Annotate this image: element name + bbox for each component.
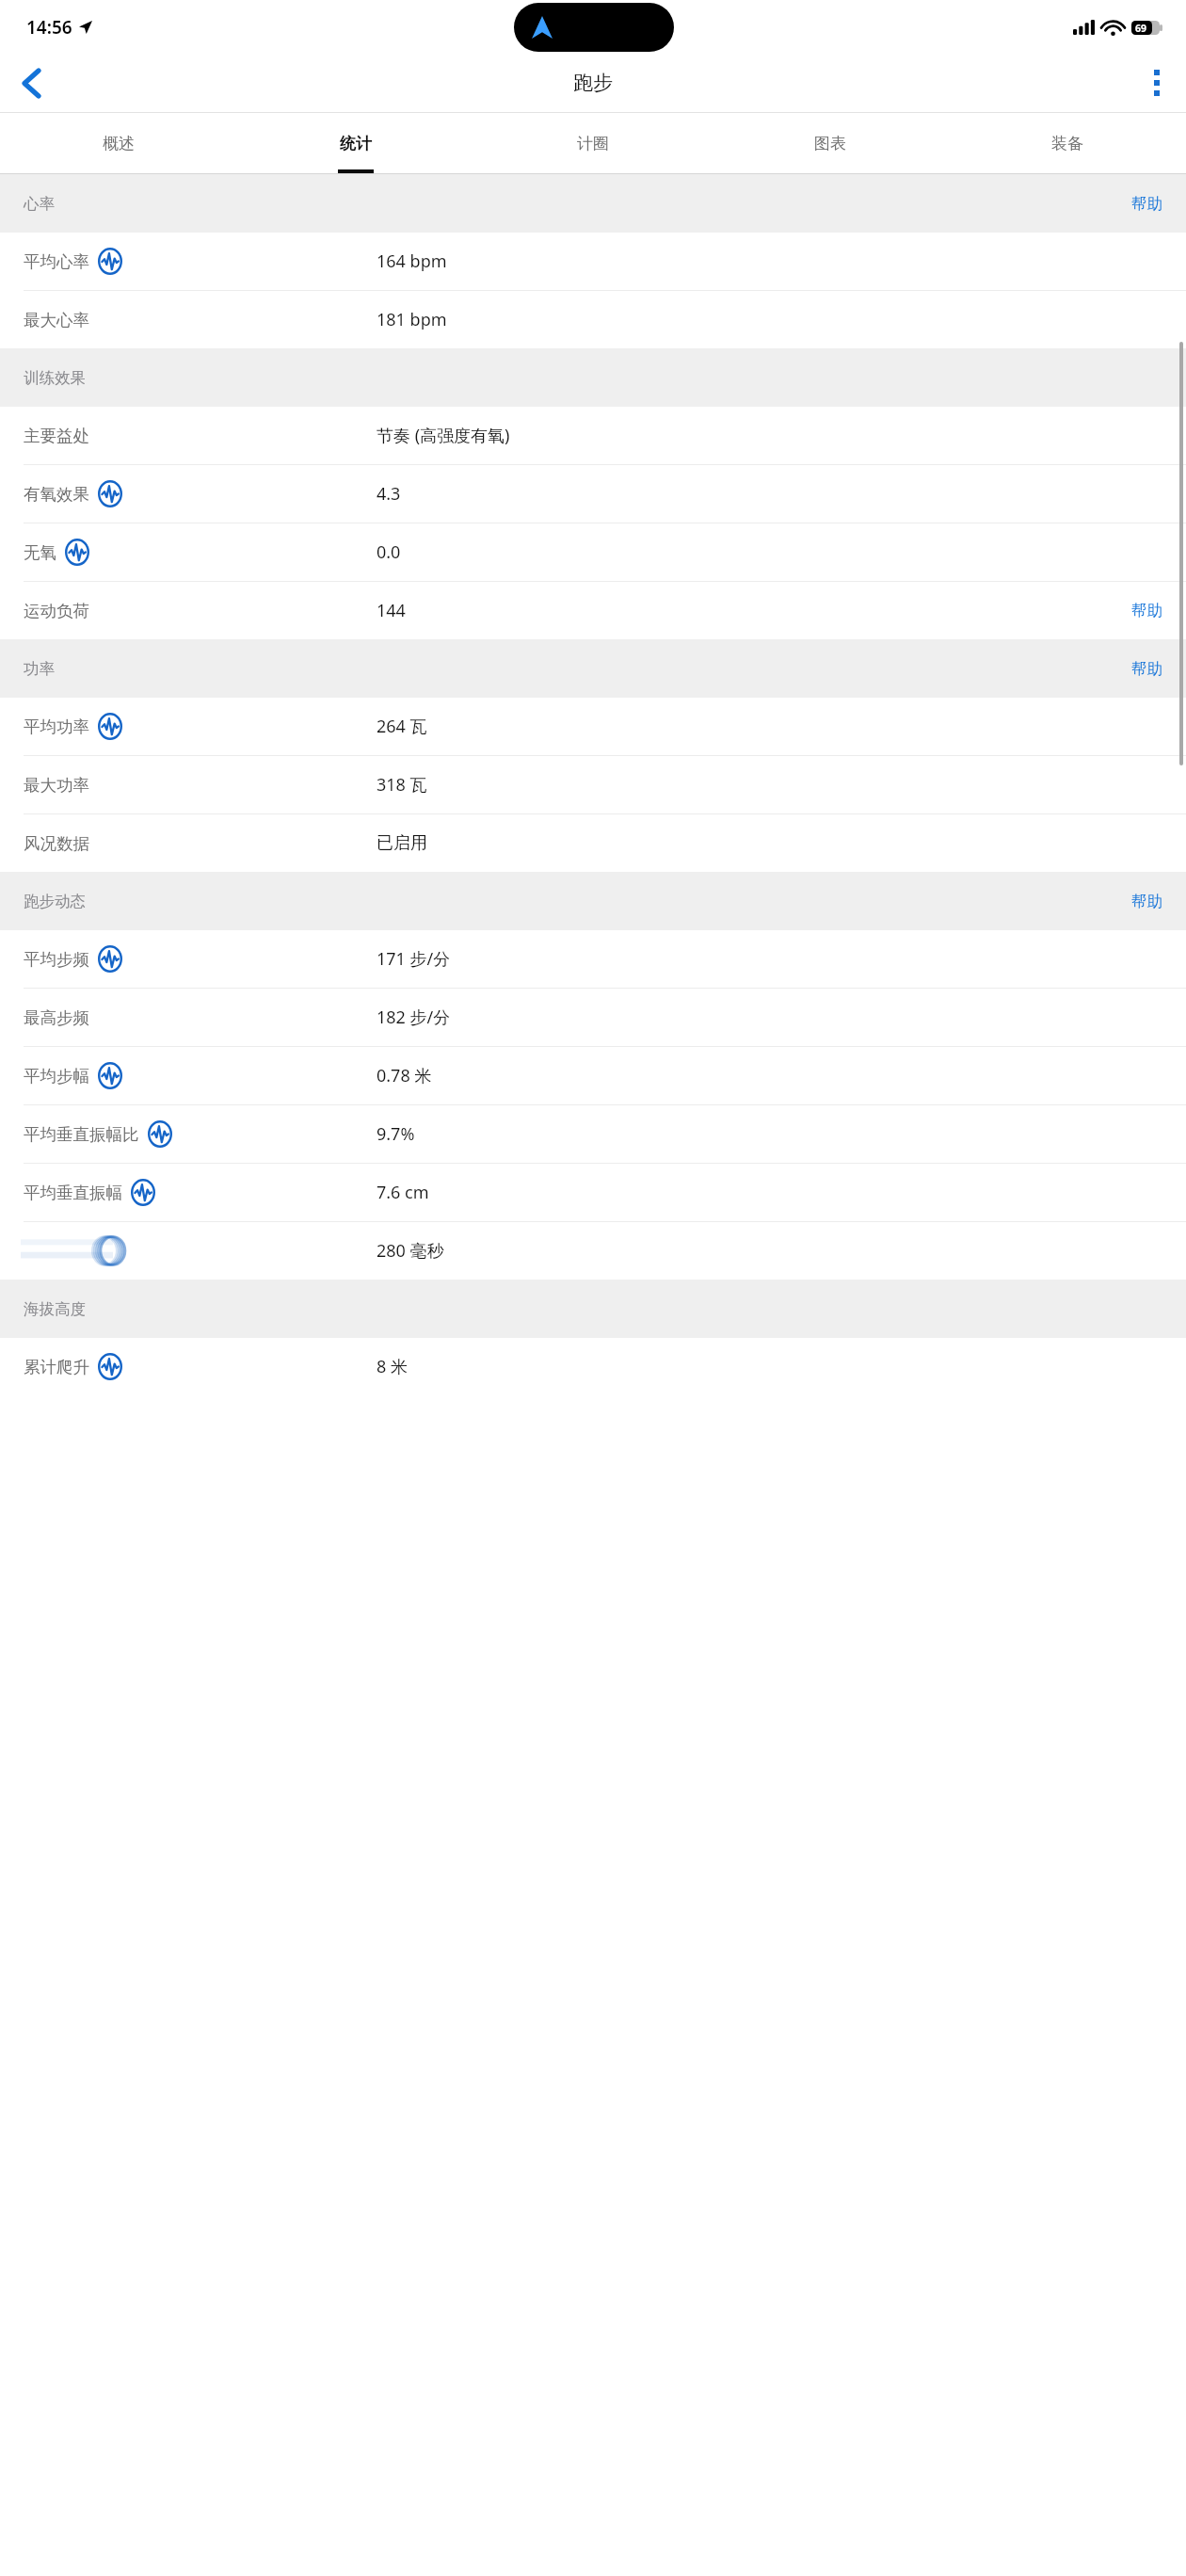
button[interactable]: 主要益处: [0, 407, 1186, 464]
staticText: 最高步频: [24, 1007, 89, 1028]
staticText: 318 瓦: [377, 773, 427, 797]
button[interactable]: 最大功率: [0, 756, 1186, 813]
staticText: 264 瓦: [377, 715, 427, 738]
staticText: 182 步/分: [377, 1006, 451, 1029]
staticText: 跑步: [573, 71, 613, 95]
button[interactable]: 图表: [712, 113, 949, 173]
staticText: 平均垂直振幅比: [24, 1124, 139, 1145]
button[interactable]: More options: [1128, 54, 1186, 112]
staticText: 280 毫秒: [377, 1239, 444, 1263]
staticText: 平均功率: [24, 716, 89, 737]
staticText: 164 bpm: [377, 250, 447, 273]
button[interactable]: 计圈: [474, 113, 712, 173]
staticText: 功率: [24, 659, 55, 679]
button[interactable]: 帮助: [1131, 582, 1186, 639]
staticText: 181 bpm: [377, 308, 447, 331]
button[interactable]: 累计爬升: [0, 1338, 1186, 1395]
staticText: 平均步幅: [24, 1066, 89, 1087]
staticText: 概述: [103, 134, 135, 153]
button[interactable]: 帮助: [1131, 872, 1186, 930]
button[interactable]: 运动负荷: [0, 582, 1186, 639]
button[interactable]: 平均垂直振幅比: [0, 1105, 1186, 1163]
button[interactable]: 装备: [949, 113, 1186, 173]
button[interactable]: 平均垂直振幅: [0, 1164, 1186, 1221]
button[interactable]: 统计: [237, 113, 474, 173]
staticText: 统计: [340, 134, 372, 153]
staticText: 最大功率: [24, 775, 89, 796]
staticText: 无氧: [24, 542, 56, 563]
staticText: 帮助: [1131, 601, 1162, 620]
staticText: 9.7%: [377, 1122, 415, 1146]
staticText: 图表: [814, 134, 846, 153]
staticText: 平均心率: [24, 251, 89, 272]
staticText: 海拔高度: [24, 1299, 86, 1319]
button[interactable]: 平均步频: [0, 930, 1186, 988]
staticText: 7.6 cm: [377, 1181, 429, 1204]
button[interactable]: 概述: [0, 113, 237, 173]
staticText: 平均步频: [24, 949, 89, 970]
button[interactable]: 平均心率: [0, 233, 1186, 290]
button[interactable]: 无氧: [0, 523, 1186, 581]
button[interactable]: 帮助: [1131, 174, 1186, 233]
staticText: 0.78 米: [377, 1064, 432, 1087]
staticText: 训练效果: [24, 368, 86, 388]
staticText: 171 步/分: [377, 947, 451, 971]
staticText: 计圈: [577, 134, 609, 153]
button[interactable]: Back: [0, 54, 62, 112]
staticText: 运动负荷: [24, 601, 89, 621]
staticText: 装备: [1051, 134, 1083, 153]
staticText: 累计爬升: [24, 1357, 89, 1377]
staticText: 最大心率: [24, 310, 89, 330]
staticText: 帮助: [1131, 659, 1162, 679]
staticText: 帮助: [1131, 194, 1162, 214]
staticText: 4.3: [377, 482, 401, 506]
button[interactable]: 最大心率: [0, 291, 1186, 348]
staticText: 已启用: [377, 832, 427, 854]
button[interactable]: 帮助: [1131, 639, 1186, 698]
staticText: 有氧效果: [24, 484, 89, 505]
button[interactable]: 平均步幅: [0, 1047, 1186, 1104]
button[interactable]: 风况数据: [0, 814, 1186, 872]
staticText: 风况数据: [24, 833, 89, 854]
staticText: 8 米: [377, 1355, 408, 1378]
staticText: 主要益处: [24, 426, 89, 446]
staticText: 144: [377, 599, 406, 622]
staticText: 平均垂直振幅: [24, 1183, 122, 1203]
staticText: 14:56: [26, 15, 72, 40]
staticText: 69: [1135, 22, 1147, 35]
button[interactable]: 平均功率: [0, 698, 1186, 755]
staticText: 心率: [24, 194, 55, 214]
staticText: 跑步动态: [24, 892, 86, 911]
staticText: 0.0: [377, 540, 401, 564]
staticText: 节奏 (高强度有氧): [377, 424, 510, 447]
staticText: 帮助: [1131, 892, 1162, 911]
button[interactable]: 最高步频: [0, 989, 1186, 1046]
button[interactable]: 有氧效果: [0, 465, 1186, 523]
